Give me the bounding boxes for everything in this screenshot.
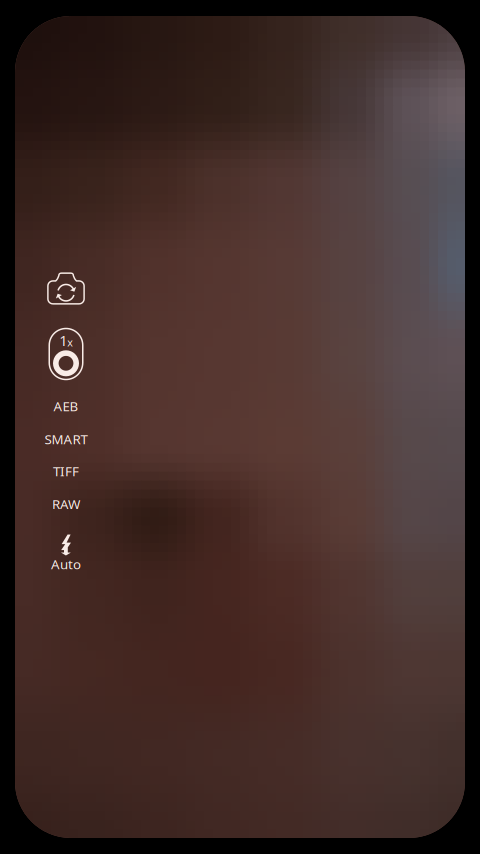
button[interactable]: TIFF [29, 456, 103, 486]
staticText: 1 [59, 331, 67, 350]
staticText: Auto [51, 555, 81, 573]
staticText: TIFF [53, 462, 79, 480]
button[interactable]: Flash Auto [33, 527, 99, 579]
button[interactable]: SMART [29, 424, 103, 454]
button[interactable]: RAW [29, 489, 103, 519]
staticText: RAW [52, 495, 80, 513]
button[interactable]: Zoom 1x [39, 325, 93, 383]
staticText: x [67, 335, 73, 350]
staticText: SMART [44, 430, 87, 448]
staticText: AEB [53, 397, 78, 415]
button[interactable]: AEB [29, 391, 103, 421]
button[interactable]: Switch camera [39, 266, 93, 310]
